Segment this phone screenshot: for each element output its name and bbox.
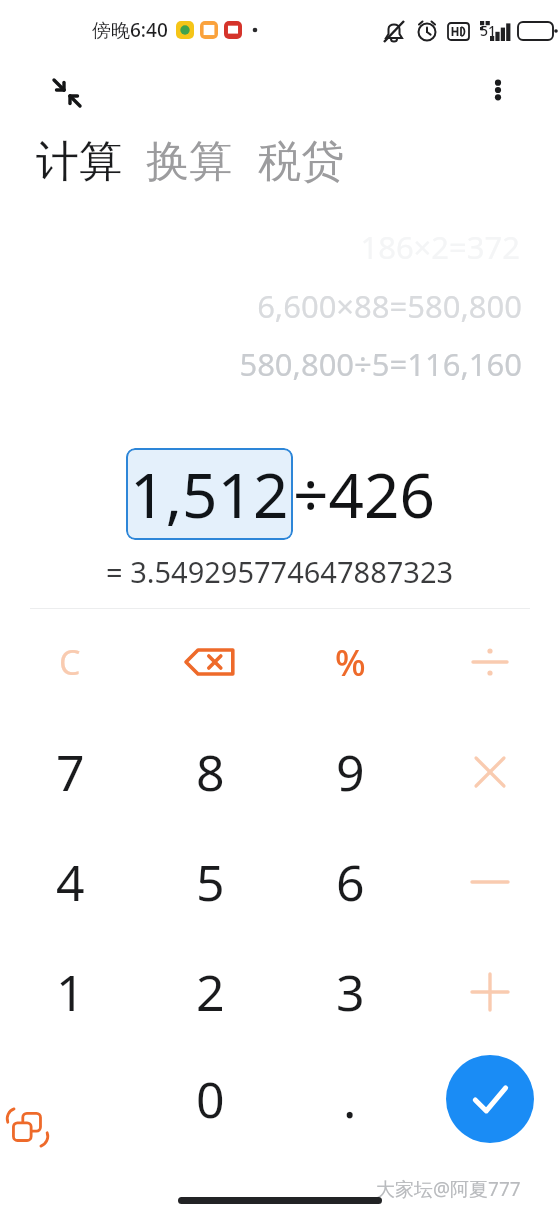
button[interactable]: 0	[155, 1047, 265, 1151]
button[interactable]: 3	[295, 940, 405, 1044]
staticText: 580,800÷5=116,160	[239, 343, 522, 385]
staticText: 5	[196, 848, 225, 916]
staticText: 傍晚6:40	[92, 17, 168, 43]
staticText: 3	[336, 958, 365, 1026]
button[interactable]: Equals	[446, 1055, 534, 1143]
staticText: 51	[480, 21, 497, 40]
button[interactable]: 换算	[146, 135, 232, 189]
staticText: = 3.549295774647887323	[106, 552, 454, 591]
staticText: 6,600×88=580,800	[257, 285, 522, 327]
button[interactable]: 2	[155, 940, 265, 1044]
button[interactable]: 税贷	[258, 135, 344, 189]
staticText: .	[343, 1065, 357, 1133]
button[interactable]: Multiply	[435, 720, 545, 824]
staticText: ÷426	[293, 452, 435, 536]
staticText: 1,512	[130, 452, 289, 536]
button[interactable]: 1	[15, 940, 125, 1044]
staticText: C	[59, 639, 81, 685]
staticText: 4	[56, 848, 85, 916]
button[interactable]: .	[295, 1047, 405, 1151]
button[interactable]: 7	[15, 720, 125, 824]
staticText: %	[335, 638, 366, 687]
button[interactable]: %	[295, 610, 405, 714]
button[interactable]: Divide	[435, 610, 545, 714]
button[interactable]: Backspace	[155, 610, 265, 714]
button[interactable]: 8	[155, 720, 265, 824]
button[interactable]: 4	[15, 830, 125, 934]
staticText: 0	[196, 1065, 225, 1133]
button[interactable]: 5	[155, 830, 265, 934]
staticText: 6	[336, 848, 365, 916]
staticText: 8	[196, 738, 225, 806]
staticText: 1	[56, 958, 85, 1026]
staticText: 7	[56, 738, 85, 806]
staticText: 计算	[36, 135, 122, 189]
button[interactable]: 计算	[36, 135, 122, 189]
staticText: 186×2=372	[360, 226, 520, 268]
staticText: 税贷	[258, 135, 344, 189]
staticText: 换算	[146, 135, 232, 189]
button[interactable]: Plus	[435, 940, 545, 1044]
button[interactable]: 6	[295, 830, 405, 934]
button[interactable]: Minus	[435, 830, 545, 934]
button[interactable]: Collapse	[34, 62, 90, 118]
button[interactable]: C	[15, 610, 125, 714]
staticText: 9	[336, 738, 365, 806]
staticText: 2	[196, 958, 225, 1026]
staticText: 大家坛@阿夏777	[376, 1176, 521, 1202]
button[interactable]: 9	[295, 720, 405, 824]
button[interactable]: Unit converter	[2, 1102, 54, 1154]
button[interactable]: 1,512	[130, 452, 289, 536]
button[interactable]: More options	[474, 66, 522, 114]
